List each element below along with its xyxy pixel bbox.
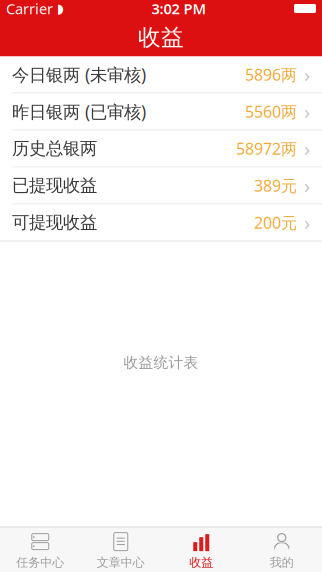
staticText: 200元 [254, 212, 297, 233]
button[interactable]: 任务中心 [0, 527, 80, 572]
staticText: › [299, 135, 310, 162]
staticText: 58972两 [236, 138, 297, 159]
staticText: 收益 [138, 24, 184, 51]
staticText: 5896两 [245, 64, 297, 85]
staticText: 昨日银两 (已审核) [12, 100, 146, 123]
staticText: 389元 [254, 175, 297, 196]
button[interactable]: 昨日银两 (已审核) [0, 93, 322, 130]
staticText: 文章中心 [97, 555, 145, 570]
button[interactable]: 已提现收益 [0, 167, 322, 204]
staticText: › [299, 98, 310, 125]
button[interactable]: 收益 [161, 527, 241, 572]
button[interactable]: 历史总银两 [0, 130, 322, 167]
button[interactable]: 我的 [241, 527, 322, 572]
staticText: 收益统计表 [123, 353, 198, 371]
staticText: 收益 [189, 555, 213, 570]
staticText: 我的 [270, 555, 294, 570]
staticText: 5560两 [245, 101, 297, 122]
staticText: › [299, 172, 310, 199]
staticText: › [299, 61, 310, 88]
staticText: 可提现收益 [12, 212, 97, 233]
button[interactable]: 今日银两 (未审核) [0, 56, 322, 93]
staticText: 任务中心 [16, 555, 64, 570]
staticText: › [299, 209, 310, 236]
button[interactable]: 文章中心 [80, 527, 161, 572]
staticText: 已提现收益 [12, 175, 97, 196]
staticText: 3:02 PM [151, 0, 206, 18]
staticText: 今日银两 (未审核) [12, 63, 146, 86]
staticText: Carrier [6, 0, 53, 18]
staticText: ◗ [53, 1, 64, 16]
button[interactable]: 可提现收益 [0, 204, 322, 241]
staticText: 历史总银两 [12, 138, 97, 159]
